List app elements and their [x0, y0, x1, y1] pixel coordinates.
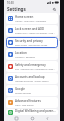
staticText: Advanced features [15, 99, 41, 103]
button[interactable]: Back [45, 116, 50, 121]
staticText: Location • Requests [15, 56, 36, 59]
staticText: Google services [15, 92, 32, 95]
button[interactable]: Home [30, 116, 35, 121]
staticText: Location [15, 51, 27, 55]
button[interactable]: Advanced features [6, 97, 58, 108]
button[interactable]: Recents [14, 116, 19, 121]
button[interactable]: Search [52, 7, 57, 12]
button[interactable]: Safety and emergency [6, 61, 58, 72]
staticText: Data access • Permission usage [15, 44, 48, 47]
button[interactable]: Home screen [6, 13, 58, 24]
button[interactable]: Google [6, 85, 58, 96]
button[interactable]: Digital Wellbeing and parental controls [6, 109, 58, 115]
staticText: SOS • Medical info • Emergency contacts [15, 68, 56, 71]
staticText: Security and privacy [15, 39, 43, 43]
staticText: Home screen [15, 15, 34, 19]
staticText: Accounts and backup [15, 75, 45, 79]
button[interactable]: Accounts and backup [6, 73, 58, 84]
staticText: Settings [7, 6, 26, 12]
button[interactable]: Location [6, 49, 58, 60]
staticText: Manage accounts • Smart Switch [15, 80, 49, 83]
staticText: Lock screen and AOD [15, 27, 45, 31]
staticText: Labs • Side button [15, 104, 34, 107]
staticText: Safety and emergency [15, 63, 46, 67]
button[interactable]: Security and privacy [6, 37, 58, 48]
button[interactable]: Lock screen and AOD [6, 25, 58, 36]
staticText: 10:30 [7, 1, 14, 5]
staticText: Google [15, 87, 25, 91]
staticText: Layout • App icons • Wallpaper [15, 20, 47, 23]
staticText: Digital Wellbeing and parental controls [15, 109, 56, 113]
staticText: Screen lock • Always On Display • Widget… [15, 32, 56, 35]
